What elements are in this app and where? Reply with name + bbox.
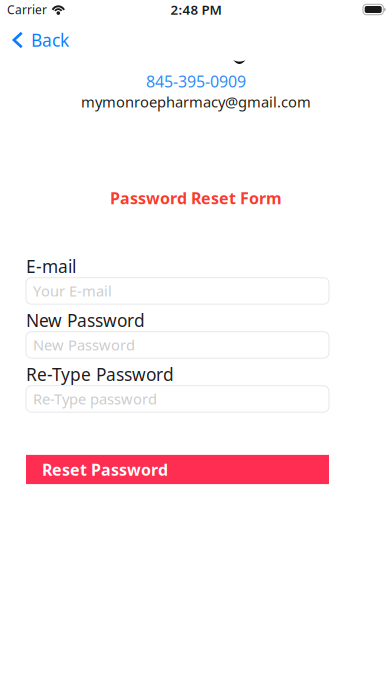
staticText: Password Reset Form — [110, 187, 282, 209]
staticText: Back — [31, 28, 69, 51]
staticText: E-mail — [26, 255, 76, 278]
staticText: New Password — [26, 309, 145, 332]
staticText: mymonroepharmacy@gmail.com — [81, 92, 311, 111]
staticText: Re-Type password — [33, 389, 157, 409]
staticText: 2:48 PM — [170, 1, 221, 18]
staticText: Re-Type Password — [26, 363, 174, 386]
button[interactable]: Reset Password — [26, 455, 329, 484]
staticText: Reset Password — [42, 459, 168, 480]
staticText: Carrier — [7, 1, 47, 17]
staticText: Your E-mail — [33, 281, 112, 301]
button[interactable]: Back — [0, 19, 79, 61]
staticText: 845-395-0909 — [146, 71, 246, 92]
staticText: New Password — [33, 335, 135, 355]
